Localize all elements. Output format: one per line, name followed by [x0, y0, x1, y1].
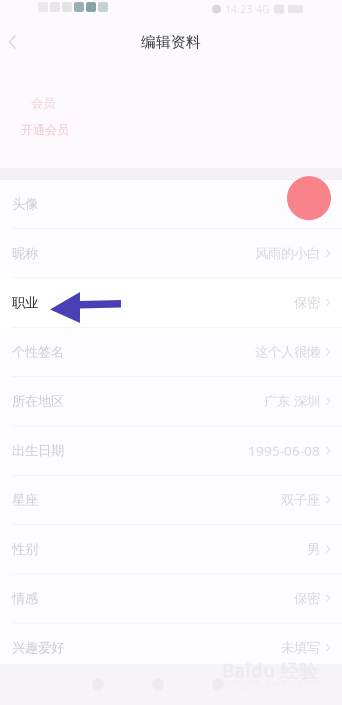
button[interactable]: 昵称 — [0, 229, 342, 279]
button[interactable]: 所在地区 — [0, 377, 342, 426]
staticText: 职业 — [12, 295, 38, 311]
staticText: 男 — [307, 541, 320, 557]
staticText: Baidu 经验 — [222, 658, 318, 683]
button[interactable]: 头像 — [0, 180, 342, 229]
staticText: 昵称 — [12, 245, 38, 262]
button[interactable]: 个性签名 — [0, 328, 342, 377]
staticText: 14:23 — [225, 2, 252, 16]
button[interactable]: 职业 — [0, 279, 342, 328]
staticText: 会员 — [31, 96, 55, 111]
staticText: 保密 — [294, 590, 320, 607]
staticText: 双子座 — [281, 492, 320, 508]
staticText: 所在地区 — [12, 393, 64, 410]
staticText: 1995-06-08 — [248, 442, 320, 459]
staticText: 风雨的小白 — [255, 245, 320, 262]
staticText: 广东 深圳 — [264, 393, 320, 410]
button[interactable]: 情感 — [0, 574, 342, 624]
button[interactable]: 返回 — [0, 20, 36, 64]
staticText: 编辑资料 — [141, 33, 201, 51]
button[interactable]: 出生日期 — [0, 426, 342, 476]
staticText: 4G — [256, 2, 270, 16]
button[interactable]: 星座 — [0, 476, 342, 525]
staticText: 个性签名 — [12, 344, 64, 360]
staticText: 兴趣爱好 — [12, 640, 64, 656]
button[interactable]: 兴趣爱好 — [0, 624, 342, 673]
staticText: 保密 — [294, 295, 320, 311]
staticText: 未填写 — [281, 640, 320, 656]
staticText: 情感 — [12, 590, 38, 607]
button[interactable]: 性别 — [0, 525, 342, 574]
staticText: 星座 — [12, 492, 38, 508]
staticText: 头像 — [12, 196, 38, 212]
staticText: 出生日期 — [12, 442, 64, 459]
staticText: 性别 — [12, 541, 38, 557]
staticText: 这个人很懒 — [255, 344, 320, 360]
staticText: 开通会员 — [21, 123, 69, 137]
